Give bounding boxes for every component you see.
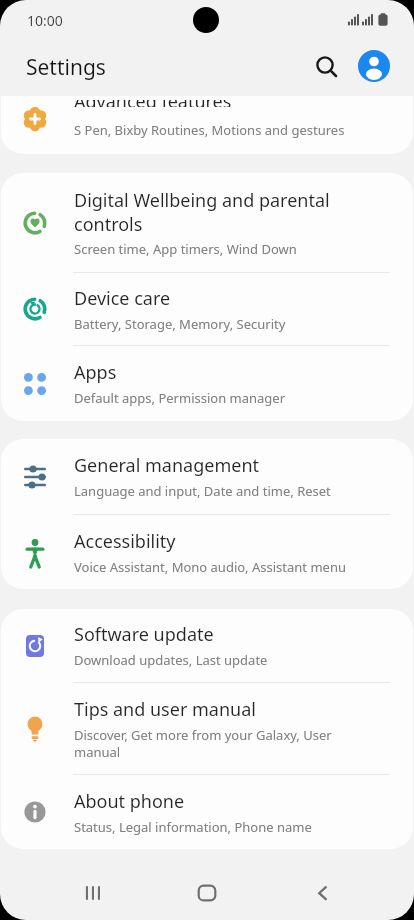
staticText: Software update [74,622,384,647]
button[interactable]: Software update [1,609,413,682]
button[interactable]: About phone [1,775,413,849]
staticText: S Pen, Bixby Routines, Motions and gestu… [74,121,345,139]
button[interactable]: Digital Wellbeing and parental controls [1,173,413,272]
staticText: Settings [26,53,106,82]
staticText: Advanced features [74,100,232,107]
staticText: Status, Legal information, Phone name [74,818,384,836]
button[interactable] [303,44,347,88]
staticText: General management [74,453,384,478]
staticText: Accessibility [74,529,384,554]
staticText: Discover, Get more from your Galaxy, Use… [74,726,364,761]
button[interactable] [358,50,390,82]
staticText: 10:00 [27,11,63,30]
staticText: Download updates, Last update [74,651,384,669]
button[interactable] [185,871,229,915]
button[interactable]: Tips and user manual [1,683,413,774]
button[interactable]: Advanced features [1,96,413,154]
staticText: About phone [74,789,384,814]
staticText: Language and input, Date and time, Reset [74,482,384,500]
staticText: Default apps, Permission manager [74,389,384,407]
staticText: Device care [74,286,384,311]
button[interactable]: General management [1,439,413,514]
button[interactable]: Accessibility [1,515,413,589]
button[interactable]: Apps [1,346,413,421]
staticText: Tips and user manual [74,697,364,722]
staticText: Battery, Storage, Memory, Security [74,315,384,333]
button[interactable] [70,871,114,915]
staticText: Screen time, App timers, Wind Down [74,240,364,258]
button[interactable] [300,871,344,915]
staticText: Apps [74,360,384,385]
button[interactable]: Device care [1,273,413,345]
staticText: Voice Assistant, Mono audio, Assistant m… [74,558,384,576]
staticText: Digital Wellbeing and parental controls [74,188,364,236]
